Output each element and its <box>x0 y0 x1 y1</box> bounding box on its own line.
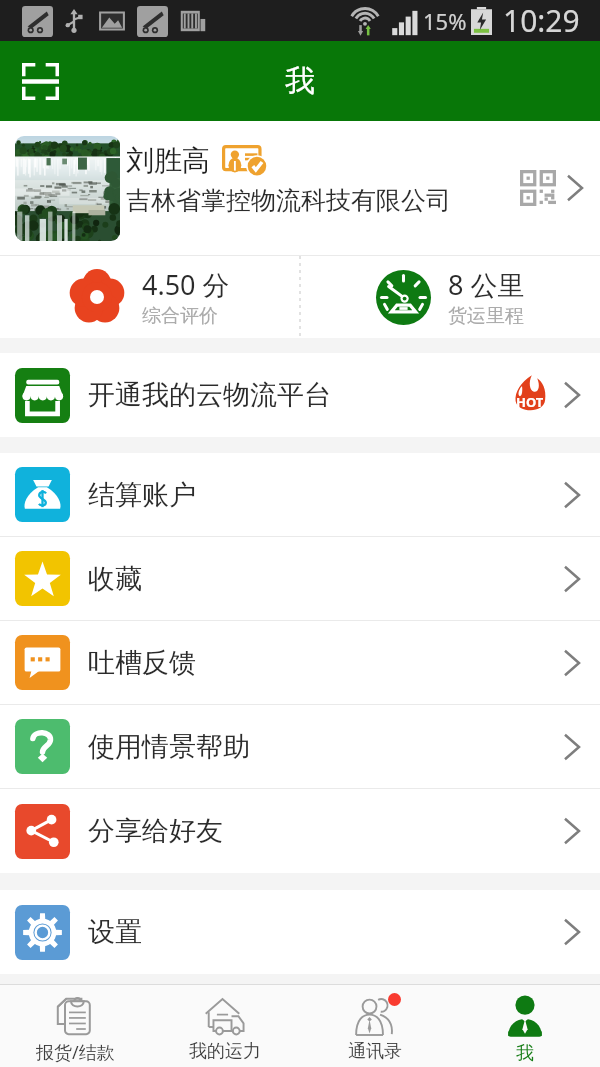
staticText: 设置 <box>88 915 142 949</box>
button[interactable]: 8 公里 <box>301 266 600 328</box>
button[interactable]: 我 <box>450 985 600 1067</box>
staticText: 货运里程 <box>448 304 524 328</box>
button[interactable]: 4.50 分 <box>0 266 299 328</box>
staticText: 综合评价 <box>142 304 218 328</box>
staticText: 分享给好友 <box>88 814 223 848</box>
staticText: 4.50 分 <box>142 266 230 303</box>
button[interactable]: 使用情景帮助 <box>0 705 600 788</box>
staticText: 结算账户 <box>88 478 196 512</box>
staticText: 我 <box>285 62 315 100</box>
staticText: 吐槽反馈 <box>88 646 196 680</box>
staticText: 通讯录 <box>348 1040 402 1063</box>
staticText: 8 公里 <box>448 266 525 303</box>
staticText: HOT <box>516 393 544 411</box>
button[interactable]: 收藏 <box>0 537 600 620</box>
button[interactable]: 开通我的云物流平台 <box>0 353 600 437</box>
button[interactable]: 刘胜高 <box>0 121 600 255</box>
button[interactable]: My QR code <box>515 165 561 211</box>
button[interactable]: 设置 <box>0 890 600 974</box>
button[interactable]: 报货/结款 <box>0 985 150 1067</box>
staticText: 我 <box>516 1042 534 1065</box>
staticText: 收藏 <box>88 562 142 596</box>
staticText: 15% <box>423 6 467 36</box>
button[interactable]: 结算账户 <box>0 453 600 536</box>
staticText: 使用情景帮助 <box>88 730 250 764</box>
staticText: 我的运力 <box>189 1040 261 1063</box>
button[interactable]: Scan QR code <box>0 41 80 121</box>
button[interactable]: 分享给好友 <box>0 789 600 873</box>
staticText: 吉林省掌控物流科技有限公司 <box>126 185 451 216</box>
staticText: 开通我的云物流平台 <box>88 378 331 412</box>
staticText: 报货/结款 <box>36 1040 115 1065</box>
button[interactable]: 我的运力 <box>150 985 300 1067</box>
button[interactable]: 通讯录 <box>300 985 450 1067</box>
staticText: 10:29 <box>503 0 580 41</box>
button[interactable]: 吐槽反馈 <box>0 621 600 704</box>
staticText: 刘胜高 <box>126 143 210 178</box>
